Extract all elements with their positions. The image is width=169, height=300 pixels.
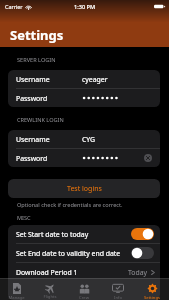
- staticText: Crew: [79, 295, 89, 300]
- button[interactable]: Off: [131, 247, 154, 259]
- staticText: Today: [128, 268, 148, 277]
- staticText: Test logins: [67, 184, 102, 194]
- staticText: cyeager: [82, 75, 108, 84]
- button[interactable]: Set End date to validity end date: [8, 244, 160, 262]
- button[interactable]: Set Start date to today: [8, 225, 160, 243]
- button[interactable]: Password: [8, 149, 160, 167]
- staticText: Optional check if credentials are correc…: [17, 201, 123, 209]
- button[interactable]: Username: [8, 130, 160, 148]
- button[interactable]: Test logins: [8, 179, 160, 198]
- staticText: Download Period 1: [16, 268, 78, 277]
- staticText: Settings: [144, 295, 160, 300]
- staticText: MISC: [17, 214, 31, 222]
- staticText: Info: [114, 295, 122, 300]
- staticText: Username: [16, 75, 50, 84]
- staticText: SERVER LOGIN: [17, 56, 56, 64]
- staticText: CREWLINK LOGIN: [17, 116, 64, 124]
- button[interactable]: Download Period 1: [8, 263, 160, 281]
- staticText: Set Start date to today: [16, 230, 89, 239]
- staticText: Settings: [10, 26, 64, 44]
- button[interactable]: Flights: [33, 279, 67, 300]
- staticText: Username: [16, 135, 50, 144]
- staticText: Password: [16, 94, 48, 103]
- button[interactable]: Info: [101, 279, 135, 300]
- staticText: CYG: [82, 135, 96, 144]
- button[interactable]: Settings: [135, 279, 169, 300]
- staticText: Manage: [8, 295, 25, 300]
- button[interactable]: Manage: [0, 279, 33, 300]
- staticText: Password: [16, 154, 48, 163]
- button[interactable]: Password: [8, 89, 160, 107]
- staticText: Carrier: [5, 3, 23, 10]
- button[interactable]: Crew: [67, 279, 101, 300]
- button[interactable]: On: [131, 228, 154, 240]
- staticText: Flights: [43, 294, 57, 300]
- button[interactable]: Username: [8, 70, 160, 88]
- button[interactable]: Clear text: [144, 154, 152, 162]
- staticText: Set End date to validity end date: [16, 249, 121, 258]
- staticText: 1:30 PM: [74, 3, 96, 11]
